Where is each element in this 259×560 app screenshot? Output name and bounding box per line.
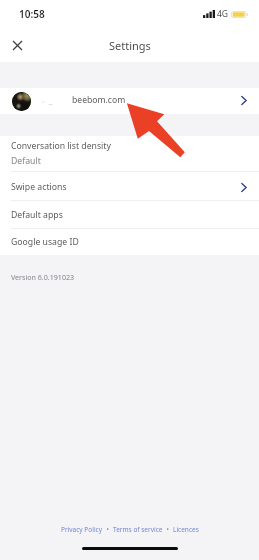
button[interactable]: Conversation list density (0, 136, 259, 171)
staticText: Google usage ID (11, 236, 79, 248)
staticText: Swipe actions (11, 181, 67, 193)
staticText: beebom.com (72, 94, 126, 106)
button[interactable]: . _ (0, 88, 259, 114)
staticText: Version 6.0.191023 (11, 272, 75, 282)
button[interactable]: Swipe actions (0, 172, 259, 200)
staticText: Settings (109, 38, 151, 53)
staticText: Conversation list density (11, 140, 111, 152)
staticText: • (163, 525, 173, 534)
staticText: Default (11, 155, 41, 167)
staticText: Default apps (11, 209, 63, 221)
button[interactable]: Terms of service (113, 525, 163, 534)
button[interactable]: Privacy Policy (61, 525, 103, 534)
button[interactable]: Licences (173, 525, 199, 534)
staticText: . _ (42, 94, 53, 106)
staticText: • (103, 525, 113, 534)
button[interactable]: Default apps (0, 201, 259, 228)
staticText: 4G (217, 8, 229, 20)
button[interactable]: Google usage ID (0, 229, 259, 255)
staticText: 10:58 (19, 7, 45, 21)
button[interactable]: Close (5, 33, 30, 58)
